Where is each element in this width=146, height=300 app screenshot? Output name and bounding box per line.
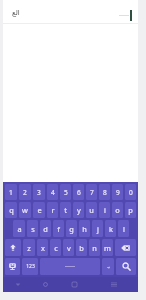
button[interactable]: Home xyxy=(32,277,58,292)
button[interactable]: l xyxy=(118,220,129,237)
staticText: l xyxy=(123,224,125,234)
staticText: ., xyxy=(107,263,110,270)
button[interactable]: y xyxy=(73,202,84,218)
button[interactable]: 1 xyxy=(5,184,17,200)
button[interactable]: h xyxy=(79,220,90,237)
staticText: d xyxy=(43,224,48,234)
staticText: g xyxy=(69,224,74,234)
button[interactable]: u xyxy=(86,202,97,218)
staticText: u xyxy=(89,205,94,215)
staticText: 5 xyxy=(64,188,68,197)
staticText: e xyxy=(37,205,42,215)
button[interactable]: p xyxy=(125,202,136,218)
staticText: b xyxy=(79,243,84,253)
button[interactable]: r xyxy=(47,202,58,218)
button[interactable]: 2 xyxy=(19,184,31,200)
button[interactable]: f xyxy=(53,220,64,237)
button[interactable]: v xyxy=(63,239,74,256)
button[interactable]: c xyxy=(50,239,61,256)
button[interactable]: a xyxy=(13,220,25,237)
button[interactable]: d xyxy=(40,220,51,237)
staticText: y xyxy=(77,205,81,215)
button[interactable]: o xyxy=(112,202,123,218)
button[interactable]: n xyxy=(89,239,100,256)
staticText: v xyxy=(67,243,71,253)
button[interactable] xyxy=(116,258,136,275)
staticText: x xyxy=(41,243,45,253)
staticText: p xyxy=(128,205,133,215)
button[interactable]: ., xyxy=(102,258,114,275)
staticText: 4 xyxy=(51,188,55,197)
button[interactable]: g xyxy=(66,220,77,237)
button[interactable]: 123 xyxy=(22,258,38,275)
staticText: f xyxy=(57,224,60,234)
staticText: j xyxy=(97,224,99,234)
staticText: a xyxy=(17,224,22,234)
staticText: k xyxy=(109,224,113,234)
staticText: i xyxy=(104,205,106,215)
staticText: 3 xyxy=(37,188,41,197)
staticText: n xyxy=(92,243,97,253)
button[interactable]: q xyxy=(5,202,17,218)
button[interactable]: m xyxy=(102,239,113,256)
button[interactable]: s xyxy=(27,220,38,237)
button[interactable]: i xyxy=(99,202,110,218)
staticText: q xyxy=(9,205,14,215)
button[interactable]: Back xyxy=(3,277,32,292)
staticText: الع xyxy=(12,9,20,17)
staticText: w xyxy=(22,205,28,215)
staticText: c xyxy=(54,243,58,253)
staticText: 123 xyxy=(26,263,35,270)
button[interactable] xyxy=(115,239,136,256)
button[interactable]: e xyxy=(33,202,45,218)
button[interactable]: z xyxy=(23,239,35,256)
button[interactable] xyxy=(5,239,21,256)
staticText: 0 xyxy=(129,188,133,197)
button[interactable] xyxy=(5,258,20,275)
button[interactable]: Recents xyxy=(58,277,90,292)
button[interactable]: 8 xyxy=(99,184,110,200)
button[interactable]: t xyxy=(60,202,71,218)
staticText: 1 xyxy=(9,188,13,197)
staticText: o xyxy=(115,205,120,215)
staticText: t xyxy=(64,205,67,215)
staticText: h xyxy=(82,224,87,234)
staticText: m xyxy=(104,243,111,253)
staticText: 6 xyxy=(77,188,81,197)
staticText: 9 xyxy=(116,188,120,197)
button[interactable]: 7 xyxy=(86,184,97,200)
button[interactable]: 5 xyxy=(60,184,71,200)
button[interactable]: 0 xyxy=(125,184,136,200)
button[interactable]: b xyxy=(76,239,87,256)
button[interactable]: 3 xyxy=(33,184,45,200)
button[interactable] xyxy=(40,258,100,275)
staticText: z xyxy=(27,243,31,253)
staticText: s xyxy=(31,224,35,234)
button[interactable]: x xyxy=(37,239,48,256)
button[interactable]: k xyxy=(105,220,116,237)
button[interactable]: 4 xyxy=(47,184,58,200)
button[interactable]: 9 xyxy=(112,184,123,200)
button[interactable]: Menu xyxy=(90,277,138,292)
staticText: r xyxy=(51,205,55,215)
button[interactable]: j xyxy=(92,220,103,237)
button[interactable]: w xyxy=(19,202,31,218)
staticText: 8 xyxy=(103,188,107,197)
button[interactable]: 6 xyxy=(73,184,84,200)
staticText: 7 xyxy=(90,188,94,197)
staticText: 2 xyxy=(23,188,27,197)
